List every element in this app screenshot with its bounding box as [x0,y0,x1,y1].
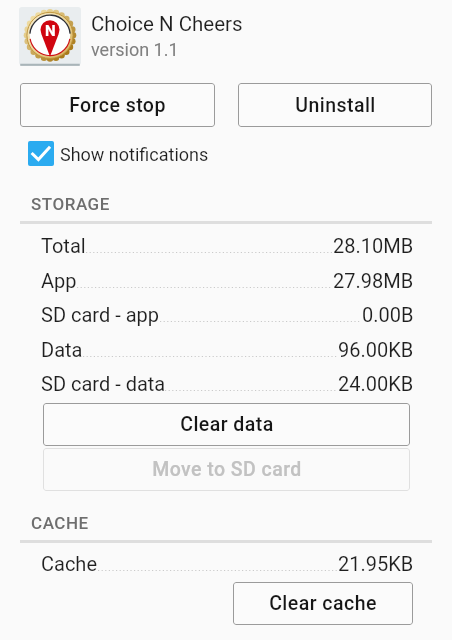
staticText: Move to SD card [152,458,302,481]
button[interactable]: Uninstall [238,83,432,127]
staticText: Show notifications [60,144,209,165]
staticText: App [41,269,77,292]
staticText: Total [41,234,86,257]
staticText: Cache [41,552,97,575]
staticText: Uninstall [295,94,376,117]
button[interactable]: Clear cache [233,582,413,625]
button[interactable]: Show notifications [12,137,432,171]
staticText: 27.98MB [333,269,414,292]
staticText: 24.00KB [338,372,414,395]
staticText: Force stop [69,94,166,117]
button[interactable]: SD card - data [0,369,452,397]
staticText: SD card - data [41,372,166,395]
staticText: Clear cache [269,592,377,615]
staticText: 96.00KB [338,338,414,361]
staticText: SD card - app [41,303,159,326]
button[interactable]: Total [0,231,452,259]
staticText: CACHE [31,513,89,533]
staticText: STORAGE [31,194,110,214]
staticText: version 1.1 [91,39,179,60]
button[interactable]: Clear data [43,403,410,446]
staticText: Data [41,338,83,361]
button[interactable]: Data [0,335,452,363]
staticText: N [45,22,56,40]
staticText: 28.10MB [333,234,414,257]
button[interactable]: SD card - app [0,300,452,328]
button: Move to SD card [43,448,410,491]
staticText: Choice N Cheers [91,12,243,36]
button[interactable]: App [0,266,452,294]
staticText: 21.95KB [338,552,414,575]
button[interactable]: Force stop [20,83,215,127]
other: App icon [19,7,81,68]
staticText: 0.00B [362,303,414,326]
staticText: Clear data [180,413,274,436]
button[interactable]: Cache [0,549,452,577]
